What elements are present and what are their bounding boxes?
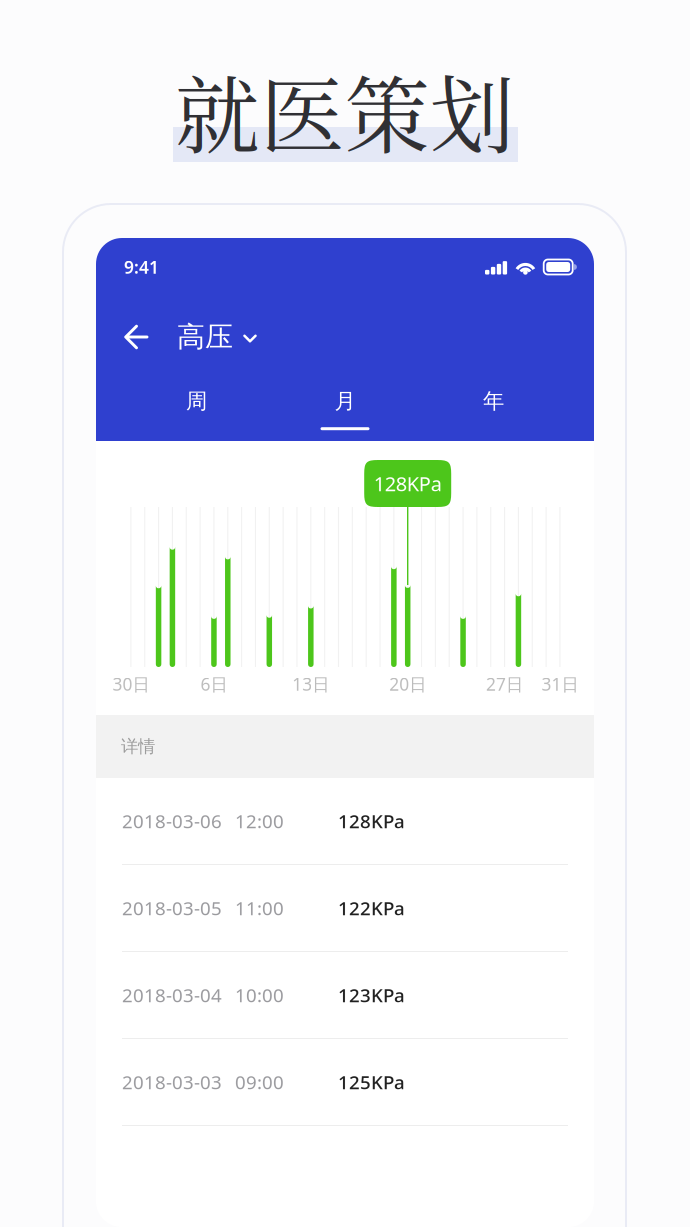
staticText: 12:00: [235, 809, 284, 833]
staticText: 2018-03-03: [122, 1070, 222, 1094]
staticText: 09:00: [235, 1070, 284, 1094]
staticText: 就医策划: [175, 49, 515, 171]
button[interactable]: 2018-03-05: [96, 865, 594, 952]
staticText: 2018-03-06: [122, 809, 222, 833]
staticText: 年: [483, 388, 504, 414]
button[interactable]: 周: [122, 378, 271, 441]
staticText: 27日: [486, 672, 523, 695]
staticText: 周: [186, 388, 207, 414]
staticText: 30日: [112, 672, 149, 695]
button[interactable]: 2018-03-06: [96, 778, 594, 865]
staticText: 2018-03-05: [122, 896, 222, 920]
staticText: 月: [334, 388, 355, 414]
button[interactable]: 2018-03-04: [96, 952, 594, 1039]
button[interactable]: 月: [271, 378, 419, 441]
staticText: 高压: [177, 320, 233, 354]
staticText: 11:00: [235, 896, 284, 920]
staticText: 9:41: [124, 255, 159, 278]
staticText: 10:00: [235, 983, 284, 1007]
staticText: 详情: [121, 736, 155, 757]
staticText: 123KPa: [338, 983, 405, 1007]
staticText: 128KPa: [338, 809, 405, 833]
staticText: 20日: [389, 672, 426, 695]
button[interactable]: Back: [96, 307, 163, 366]
staticText: 2018-03-04: [122, 983, 222, 1007]
button[interactable]: 2018-03-03: [96, 1039, 594, 1126]
button[interactable]: 年: [419, 378, 568, 441]
staticText: 125KPa: [338, 1070, 405, 1094]
staticText: 13日: [292, 672, 329, 695]
staticText: 6日: [200, 672, 227, 695]
staticText: 122KPa: [338, 896, 405, 920]
staticText: 31日: [541, 672, 578, 695]
staticText: 128KPa: [374, 470, 442, 497]
button[interactable]: 高压: [163, 306, 263, 368]
